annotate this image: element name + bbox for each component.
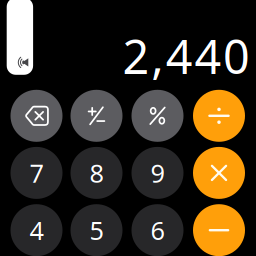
button[interactable]: 9 [131, 147, 183, 199]
staticText: 5 [89, 213, 103, 247]
staticText: 6 [150, 213, 164, 247]
button[interactable]: Subtract [193, 204, 245, 256]
button[interactable]: 8 [70, 147, 122, 199]
button[interactable]: Multiply [193, 147, 245, 199]
staticText: 7 [29, 156, 43, 190]
button[interactable]: 5 [70, 204, 122, 256]
button[interactable]: 7 [10, 147, 62, 199]
button[interactable]: 6 [131, 204, 183, 256]
button[interactable]: Percent [131, 90, 183, 142]
staticText: 4 [29, 213, 43, 247]
button[interactable]: Divide [193, 90, 245, 142]
staticText: 2,440 [123, 25, 250, 87]
button[interactable]: 4 [10, 204, 62, 256]
button[interactable]: Delete [10, 90, 62, 142]
staticText: 9 [150, 156, 164, 190]
staticText: 8 [89, 156, 103, 190]
button[interactable]: Plus minus [70, 90, 122, 142]
